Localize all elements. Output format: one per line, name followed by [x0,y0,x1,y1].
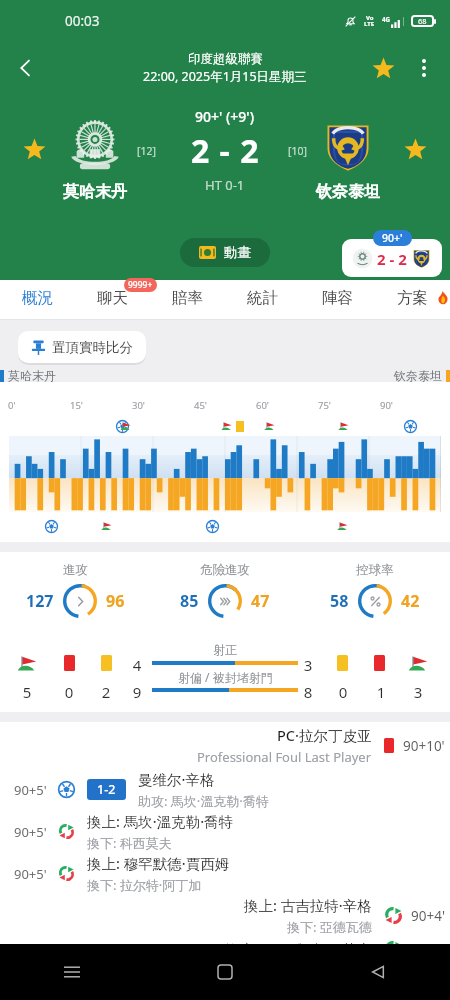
staticText: 方案 [397,288,428,308]
staticText: 47 [251,590,270,612]
button[interactable]: 動畫 [180,238,270,267]
staticText: 換上: 穆罕默德·賈西姆 [87,853,230,873]
staticText: 1-2 [97,781,116,798]
staticText: [12] [137,144,156,158]
staticText: 動畫 [224,244,251,261]
staticText: 钦奈泰坦 [394,368,442,383]
staticText: 3 [301,655,315,675]
staticText: 90+' (+9') [195,107,255,126]
staticText: 莫哈末丹 [63,182,127,202]
staticText: 0 [336,682,350,702]
staticText: 莫哈末丹 [8,368,56,383]
staticText: 控球率 [356,562,394,578]
staticText: 換上: 古吉拉特·辛格 [244,895,372,915]
button[interactable]: 統計 [225,280,300,319]
button[interactable]: 聊天 [75,280,150,319]
staticText: 15' [70,399,84,412]
staticText: 助攻: 馬坎·溫克勒·喬特 [138,792,269,810]
staticText: 換下: 拉尔特·阿丁加 [87,876,202,894]
staticText: 85 [180,590,199,612]
staticText: 60' [256,399,270,412]
button[interactable]: More options [404,48,444,88]
staticText: 90+2' [411,940,445,958]
staticText: 危險進攻 [200,562,250,578]
staticText: Vo [366,14,374,22]
staticText: 9999+ [128,279,153,291]
staticText: 90+5' [14,865,54,883]
staticText: 曼维尔·辛格 [138,769,215,789]
staticText: 42 [401,590,420,612]
staticText: 0' [8,399,16,412]
button[interactable]: 方案 [375,280,450,319]
staticText: 30' [132,399,146,412]
staticText: 90+' [382,231,403,245]
button[interactable]: 2 - 2 [342,239,442,277]
staticText: 置頂實時比分 [52,339,133,356]
staticText: 9 [130,682,144,702]
staticText: 射偏 / 被封堵射門 [178,669,273,685]
staticText: PC·拉尔丁皮亚 [277,725,372,745]
button[interactable]: 90+5' [0,852,450,894]
staticText: 90' [380,399,394,412]
button[interactable]: Back [356,950,400,994]
staticText: 換上: 馬坎·溫克勒·喬特 [87,811,234,831]
button[interactable]: 90+5' [0,768,450,810]
staticText: 聊天 [97,288,128,308]
staticText: 00:03 [65,12,100,30]
staticText: LTE [364,20,375,28]
staticText: 90+10' [403,737,445,755]
staticText: 2 - 2 [377,249,407,269]
staticText: 8 [301,682,315,702]
button[interactable]: 概況 [0,280,75,319]
button[interactable]: Back [3,46,47,90]
staticText: 45' [194,399,208,412]
staticText: 58 [330,590,349,612]
staticText: 印度超級聯賽 [188,51,263,67]
staticText: 2 [99,682,113,702]
staticText: 陣容 [322,288,353,308]
staticText: [10] [288,144,307,158]
staticText: 90+4' [411,907,445,925]
staticText: 進攻 [63,562,88,578]
staticText: 4G [382,15,391,23]
staticText: 127 [26,590,54,612]
staticText: 2 - 2 [191,129,260,173]
staticText: Professional Foul Last Player [197,748,372,766]
button[interactable]: Favourite [362,47,404,89]
staticText: 96 [106,590,125,612]
button[interactable]: Recent apps [50,950,94,994]
staticText: 4 [130,655,144,675]
button[interactable]: 置頂實時比分 [18,331,146,363]
staticText: 钦奈泰坦 [316,182,380,202]
staticText: 22:00, 2025年1月15日星期三 [143,68,307,85]
staticText: 換下: 科西莫夫 [87,834,172,852]
button[interactable]: 換上: 凡尼雅·克馬·慧廉 [0,936,450,978]
staticText: 0 [62,682,76,702]
button[interactable]: 陣容 [300,280,375,319]
button[interactable]: 換上: 古吉拉特·辛格 [0,894,450,936]
staticText: 90+5' [14,823,54,841]
staticText: 3 [411,682,425,702]
button[interactable]: 90+5' [0,810,450,852]
staticText: 90+5' [14,781,54,799]
staticText: HT 0-1 [205,176,245,194]
staticText: 概況 [22,288,53,308]
staticText: 1 [374,682,388,702]
staticText: 射正 [213,642,237,657]
staticText: 賠率 [172,288,203,308]
staticText: 換上: 凡尼雅·克馬·慧廉 [225,939,372,959]
button[interactable]: 賠率 [150,280,225,319]
staticText: 5 [20,682,34,702]
staticText: 68 [418,16,427,26]
staticText: 75' [318,399,332,412]
button[interactable]: Home [203,950,247,994]
staticText: 換下: 亞德瓦德 [287,918,372,936]
staticText: 統計 [247,288,278,308]
button[interactable]: PC·拉尔丁皮亚 [0,722,450,768]
